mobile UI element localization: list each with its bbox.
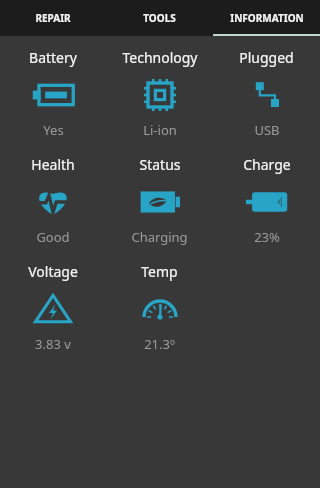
staticText: TOOLS: [143, 11, 176, 25]
other: Battery status charging: [138, 180, 182, 224]
staticText: Plugged: [239, 48, 294, 67]
staticText: 23%: [254, 228, 280, 246]
staticText: REPAIR: [35, 11, 71, 25]
staticText: Battery: [29, 48, 77, 67]
staticText: Li-ion: [143, 121, 177, 139]
staticText: Yes: [43, 121, 64, 139]
other: Plugged in via USB: [247, 75, 287, 115]
staticText: 3.83 v: [35, 335, 71, 353]
button[interactable]: Status: [106, 153, 213, 248]
button[interactable]: Health: [0, 153, 106, 248]
button[interactable]: Battery: [0, 46, 106, 141]
staticText: 21.3º: [144, 335, 175, 353]
other: Battery technology: [140, 75, 180, 115]
button[interactable]: REPAIR: [0, 0, 106, 36]
button[interactable]: Charge: [213, 153, 320, 248]
button[interactable]: INFORMATION: [213, 0, 320, 36]
staticText: INFORMATION: [230, 11, 304, 25]
staticText: Charge: [243, 155, 291, 174]
other: Charge level: [245, 180, 289, 224]
other: Battery health: [33, 182, 73, 222]
other: Battery temperature: [140, 289, 180, 329]
other: Battery voltage: [33, 289, 73, 329]
staticText: Health: [31, 155, 75, 174]
staticText: Status: [139, 155, 181, 174]
staticText: Voltage: [28, 262, 78, 281]
button[interactable]: Voltage: [0, 260, 106, 355]
staticText: Technology: [122, 48, 198, 67]
button[interactable]: Technology: [106, 46, 213, 141]
other: Battery present: [31, 73, 75, 117]
staticText: Temp: [141, 262, 178, 281]
button[interactable]: Plugged: [213, 46, 320, 141]
staticText: Good: [36, 228, 70, 246]
button[interactable]: Temp: [106, 260, 213, 355]
button[interactable]: TOOLS: [106, 0, 213, 36]
staticText: Charging: [131, 228, 188, 246]
staticText: USB: [254, 121, 280, 139]
